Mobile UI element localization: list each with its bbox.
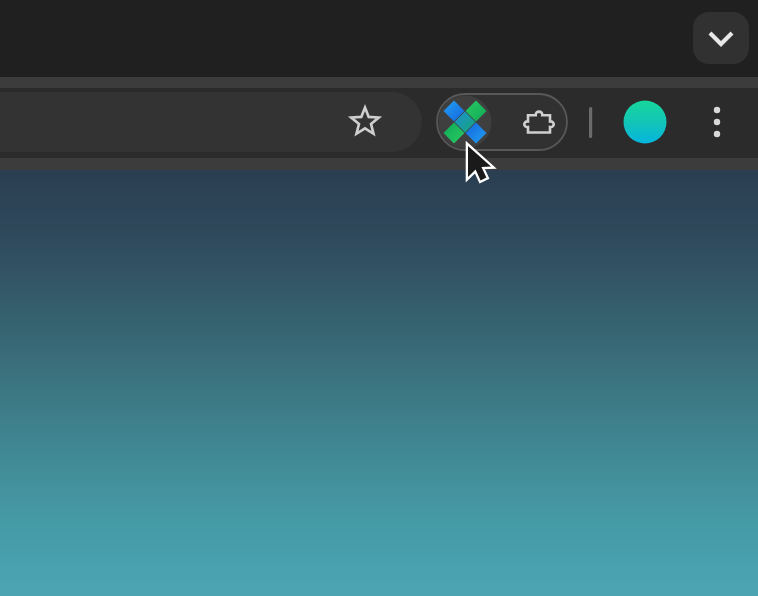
button[interactable]: More options	[696, 101, 738, 143]
button[interactable]: Profile	[623, 100, 667, 144]
button[interactable]: Extensions	[511, 94, 567, 150]
button[interactable]: Bookmark this page	[344, 101, 386, 143]
button[interactable]: Collapse	[693, 12, 749, 64]
button[interactable]: Address and search bar	[0, 92, 422, 152]
button[interactable]: Extension	[437, 94, 493, 150]
